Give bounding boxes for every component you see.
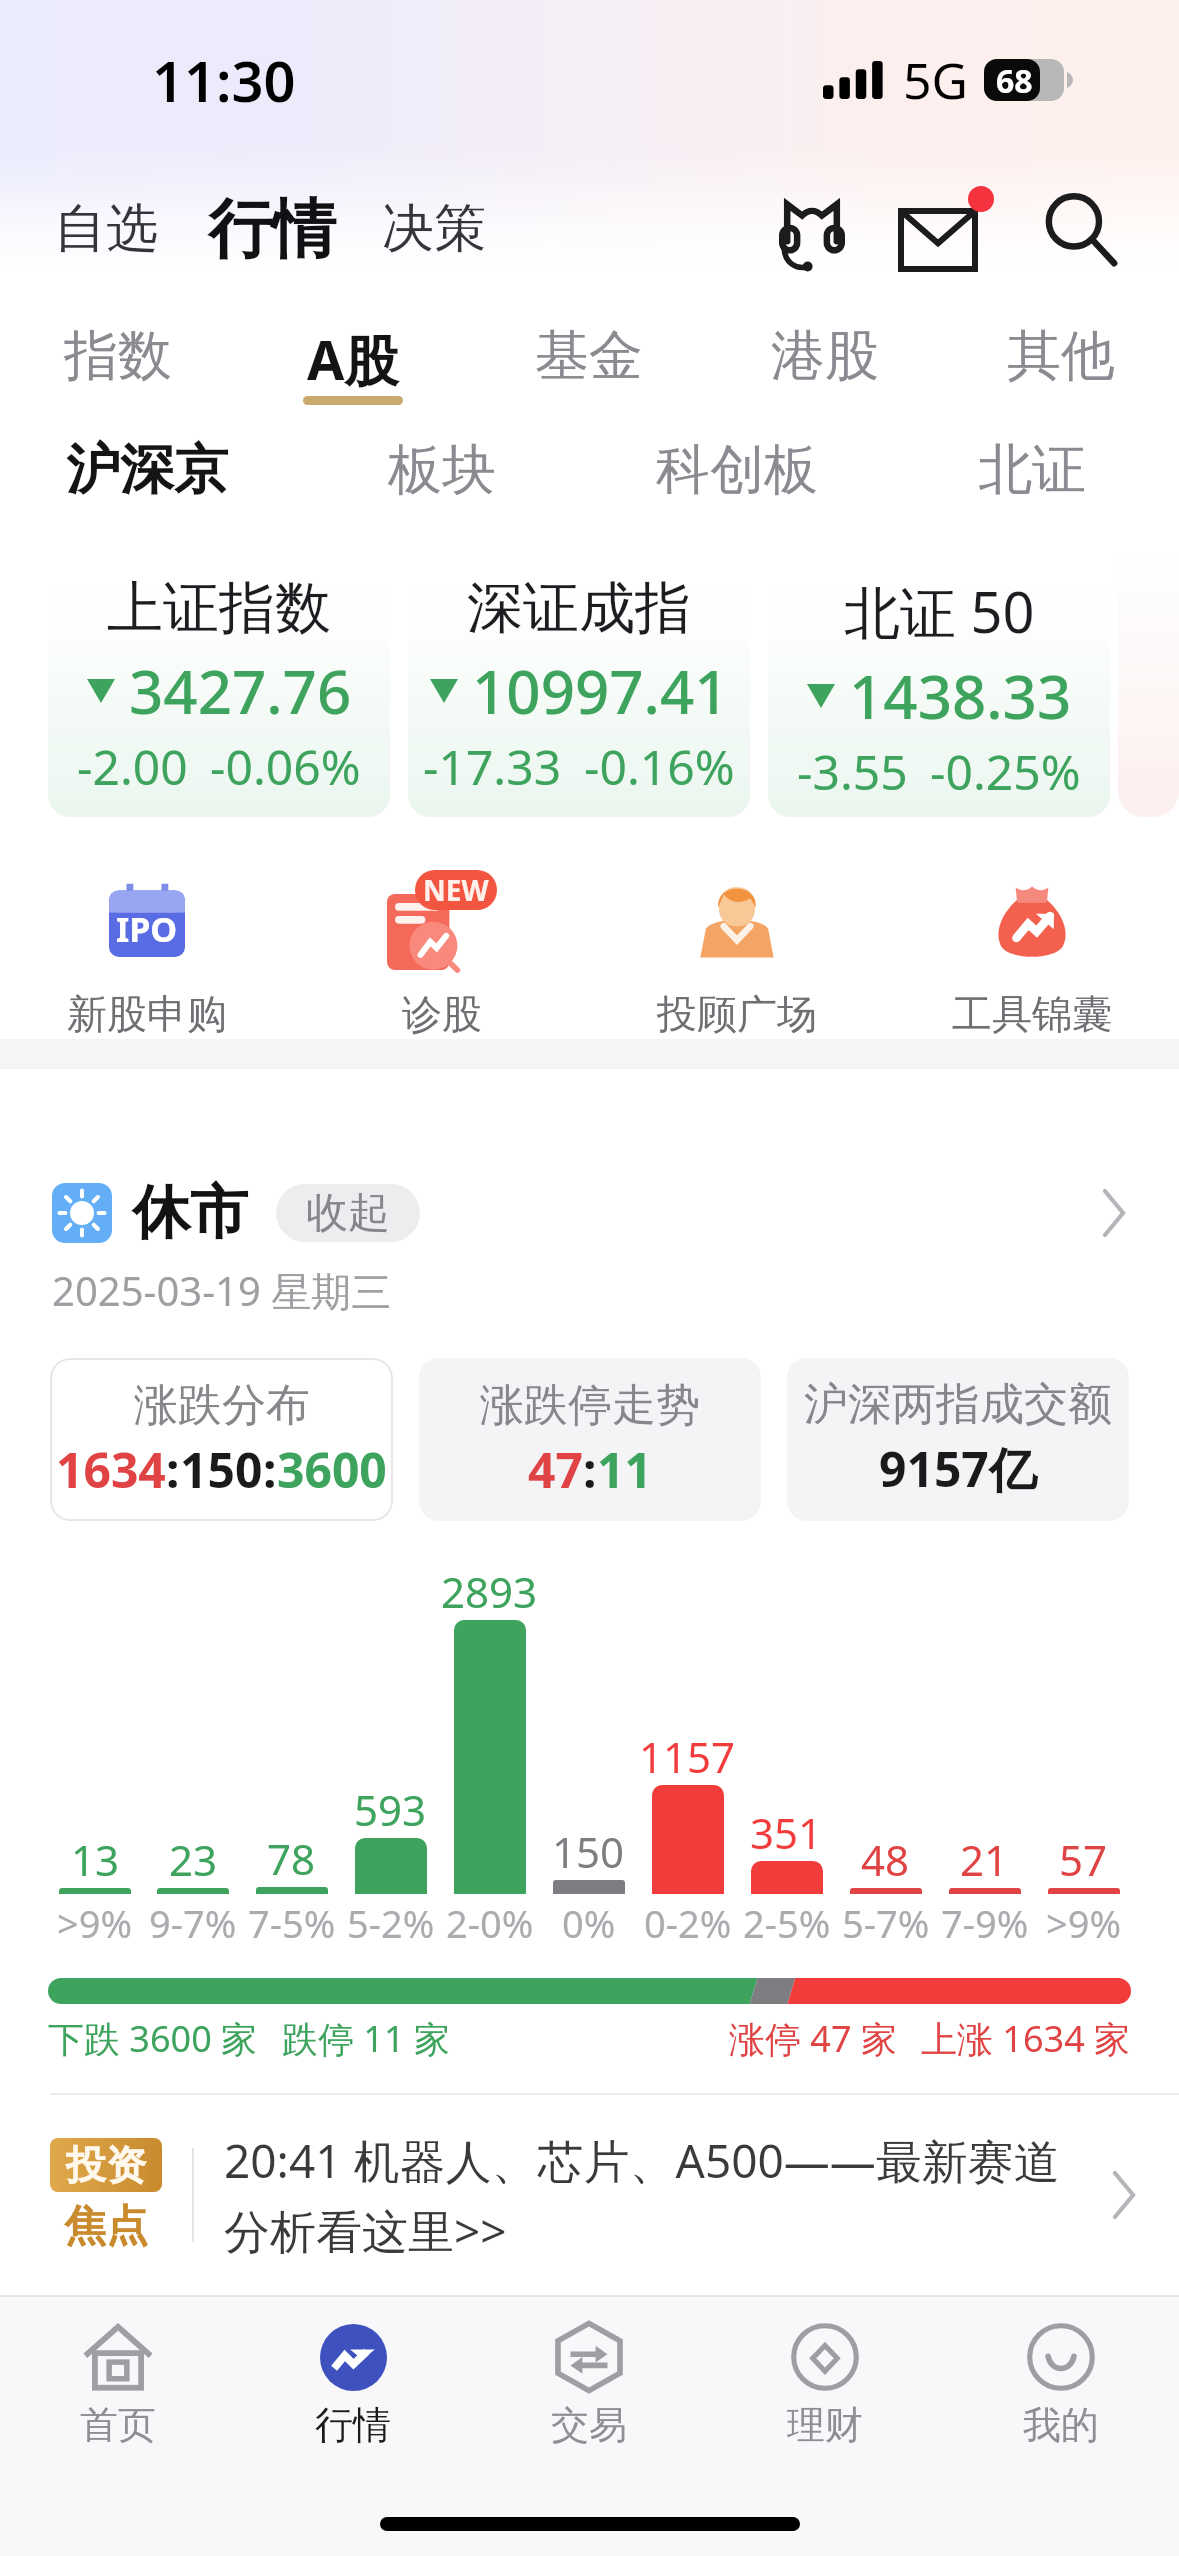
staticText: 港股	[771, 322, 879, 390]
button[interactable]: 理财	[707, 2401, 943, 2445]
staticText: 深证成指	[467, 573, 691, 644]
button[interactable]: 首页	[0, 2401, 235, 2445]
button[interactable]: 行情	[235, 2401, 471, 2445]
button[interactable]: 涨跌分布	[50, 1358, 393, 1521]
staticText: :	[583, 1437, 597, 1502]
button[interactable]: NEW	[294, 865, 589, 1039]
staticText: 跌停 11 家	[282, 2014, 450, 2063]
staticText: 351	[750, 1804, 823, 1861]
button[interactable]: Profile	[943, 2322, 1179, 2392]
staticText: 150	[552, 1823, 625, 1880]
staticText: 150	[180, 1437, 263, 1502]
staticText: 10997.41	[472, 650, 729, 732]
staticText: 0-2%	[644, 1897, 732, 1949]
staticText: 1634	[56, 1437, 166, 1502]
button[interactable]: 我的	[943, 2401, 1179, 2445]
staticText: 投顾广场	[657, 989, 817, 1039]
staticText: :	[166, 1437, 180, 1502]
staticText: 首页	[80, 2401, 156, 2445]
staticText: 78	[267, 1830, 316, 1887]
button[interactable]: 板块	[294, 436, 589, 504]
button[interactable]: 工具锦囊	[884, 865, 1179, 1039]
staticText: -3.55	[797, 739, 908, 804]
staticText: 理财	[787, 2401, 863, 2445]
staticText: 行情	[315, 2401, 391, 2445]
button[interactable]: 北证	[884, 436, 1179, 504]
staticText: 工具锦囊	[952, 989, 1112, 1039]
staticText: IPO	[116, 906, 178, 952]
button[interactable]: 决策	[374, 186, 494, 272]
button[interactable]: IPO	[0, 865, 294, 1039]
staticText: 下跌 3600 家	[48, 2014, 258, 2063]
staticText: 上涨 1634 家	[921, 2014, 1131, 2063]
staticText: -0.16%	[584, 734, 735, 799]
staticText: 5-2%	[347, 1897, 435, 1949]
button[interactable]: 科创板	[589, 436, 884, 504]
staticText: 9-7%	[149, 1897, 237, 1949]
staticText: 47	[528, 1437, 583, 1502]
button[interactable]: 港股	[707, 322, 943, 399]
staticText: 9157亿	[879, 1436, 1037, 1502]
button[interactable]: 休市	[0, 1176, 1179, 1249]
button[interactable]: 北证 50	[768, 543, 1110, 817]
staticText: -2.00	[77, 734, 188, 799]
button[interactable]: 沪深两指成交额	[787, 1358, 1129, 1521]
button[interactable]: Search	[1025, 174, 1135, 284]
button[interactable]: 自选	[46, 186, 166, 272]
staticText: 沪深两指成交额	[804, 1377, 1112, 1432]
staticText: 涨跌分布	[134, 1378, 310, 1433]
staticText: 0%	[562, 1897, 616, 1949]
staticText: -0.06%	[210, 734, 361, 799]
button[interactable]: Messages	[891, 174, 1001, 284]
button[interactable]: 基金	[471, 322, 707, 399]
staticText: 2025-03-19 星期三	[52, 1263, 392, 1318]
button[interactable]: 上证指数	[48, 543, 390, 817]
button[interactable]: Trade	[471, 2322, 707, 2392]
staticText: 11:30	[152, 42, 296, 118]
button[interactable]: 其他	[943, 322, 1179, 399]
staticText: 科创板	[656, 436, 818, 504]
staticText: 其他	[1007, 322, 1115, 390]
staticText: :	[263, 1437, 277, 1502]
staticText: 23	[169, 1831, 218, 1888]
staticText: -0.25%	[930, 739, 1081, 804]
staticText: 1438.33	[849, 655, 1072, 737]
staticText: 593	[354, 1781, 427, 1838]
staticText: 交易	[551, 2401, 627, 2445]
button[interactable]: Customer service	[757, 174, 867, 284]
staticText: 涨停 47 家	[729, 2014, 897, 2063]
button[interactable]: Quotes	[235, 2322, 471, 2392]
staticText: -17.33	[423, 734, 562, 799]
button[interactable]: 指数	[0, 322, 235, 399]
staticText: 11	[597, 1437, 652, 1502]
staticText: >9%	[1046, 1897, 1122, 1949]
staticText: 68	[996, 59, 1033, 101]
button[interactable]: 行情	[200, 187, 344, 272]
staticText: 20:41 机器人、芯片、A500——最新赛道分析看这里>>	[224, 2129, 1093, 2262]
button[interactable]: A股	[235, 322, 471, 405]
staticText: 涨跌停走势	[480, 1378, 700, 1433]
button[interactable]: 深证成指	[408, 543, 750, 817]
staticText: 13	[71, 1831, 120, 1888]
staticText: 5-7%	[842, 1897, 930, 1949]
staticText: 北证	[978, 436, 1086, 504]
staticText: 1157	[639, 1728, 736, 1785]
staticText: 决策	[382, 196, 486, 262]
button[interactable]: 投顾广场	[589, 865, 884, 1039]
staticText: 上证指数	[107, 573, 331, 644]
button[interactable]: 涨跌停走势	[419, 1358, 761, 1521]
staticText: 诊股	[402, 989, 482, 1039]
staticText: 5G	[903, 46, 968, 114]
staticText: 指数	[64, 322, 172, 390]
staticText: >9%	[57, 1897, 133, 1949]
staticText: 2-0%	[446, 1897, 534, 1949]
button[interactable]: Home	[0, 2322, 235, 2392]
button[interactable]: 交易	[471, 2401, 707, 2445]
button[interactable]: +	[1118, 543, 1179, 817]
staticText: 休市	[132, 1176, 248, 1249]
button[interactable]: 投资	[0, 2095, 1179, 2295]
button[interactable]: 沪深京	[0, 436, 294, 504]
button[interactable]: Finance	[707, 2322, 943, 2392]
staticText: NEW	[423, 871, 489, 909]
staticText: 沪深京	[66, 436, 228, 504]
